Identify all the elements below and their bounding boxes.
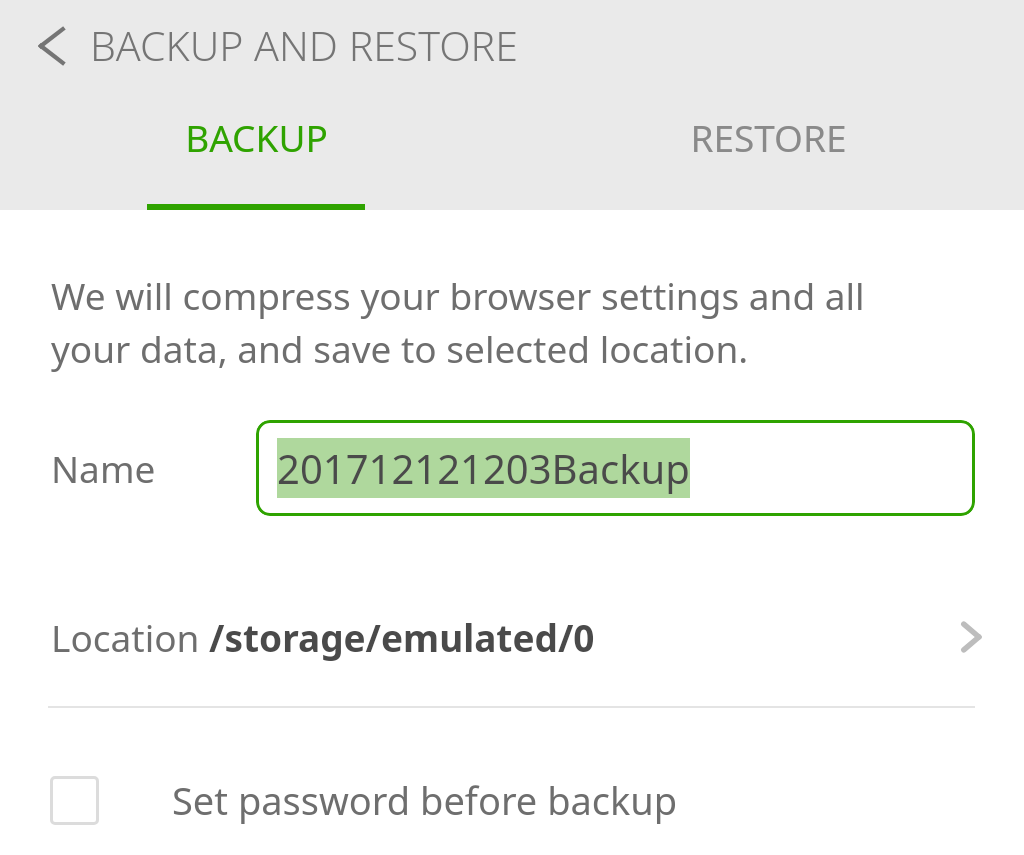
button[interactable]: RESTORE bbox=[512, 92, 1024, 210]
button[interactable]: 201712121203Backup bbox=[256, 420, 975, 516]
button[interactable]: Back bbox=[14, 9, 88, 83]
staticText: Location /storage/emulated/0 bbox=[51, 612, 595, 662]
button[interactable]: BACKUP bbox=[0, 92, 512, 210]
staticText: BACKUP bbox=[185, 112, 328, 162]
staticText: BACKUP AND RESTORE bbox=[90, 17, 518, 73]
staticText: 201712121203Backup bbox=[277, 441, 690, 495]
staticText: RESTORE bbox=[690, 112, 847, 162]
button[interactable]: Set password before backup bbox=[0, 740, 1024, 855]
staticText: Set password before backup bbox=[172, 774, 678, 826]
staticText: Name bbox=[51, 443, 156, 493]
staticText: We will compress your browser settings a… bbox=[51, 270, 865, 373]
other: Choose location bbox=[946, 612, 996, 662]
button[interactable]: Location /storage/emulated/0 bbox=[0, 582, 1024, 692]
